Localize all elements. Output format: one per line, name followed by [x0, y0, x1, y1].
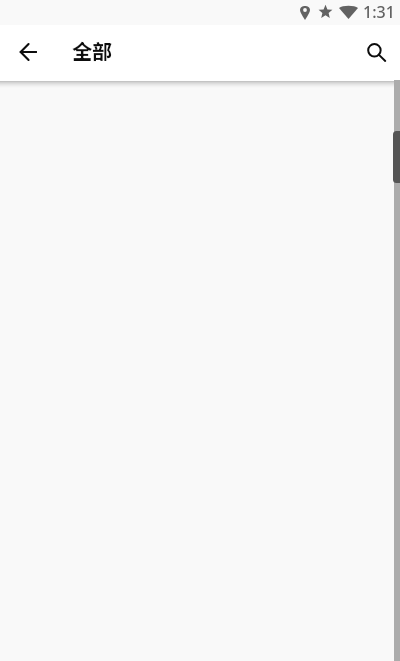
staticText: 全部	[72, 36, 112, 65]
staticText: 1:31	[363, 1, 395, 23]
button[interactable]: Search	[354, 30, 398, 74]
button[interactable]: Back	[6, 28, 54, 76]
